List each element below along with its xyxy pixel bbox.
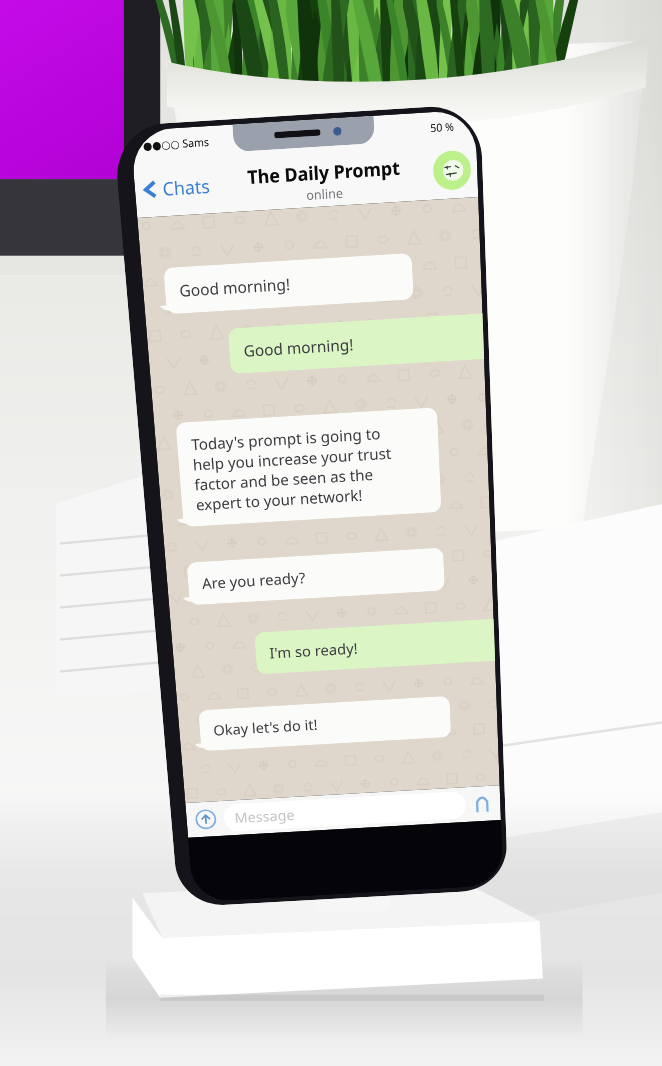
button[interactable]: I'm so ready! [254, 619, 495, 675]
staticText: The Daily Prompt [247, 155, 401, 189]
staticText: online [306, 184, 344, 203]
button[interactable]: Send [192, 807, 219, 832]
button[interactable]: Profile photo [432, 149, 472, 191]
staticText: Good morning! [179, 273, 291, 301]
staticText: Good morning! [243, 333, 355, 361]
button[interactable]: Today's prompt is going to help you incr… [175, 407, 441, 527]
staticText: Chats [157, 173, 211, 201]
staticText: I'm so ready! [269, 638, 358, 662]
button[interactable]: Good morning! [228, 313, 484, 374]
button[interactable]: Okay let's do it! [198, 696, 451, 751]
button[interactable]: Attach file [470, 792, 494, 815]
staticText: Today's prompt is going to help you incr… [190, 422, 394, 514]
staticText: Are you ready? [201, 567, 307, 593]
staticText: 50 % [430, 118, 455, 135]
button[interactable]: Message [223, 791, 466, 832]
staticText: ●●○○ Sams [142, 134, 210, 153]
button[interactable]: Are you ready? [186, 547, 445, 605]
staticText: Message [234, 805, 295, 827]
staticText: Okay let's do it! [213, 715, 319, 739]
button[interactable]: Chats [134, 173, 215, 203]
button[interactable]: Good morning! [163, 253, 414, 314]
